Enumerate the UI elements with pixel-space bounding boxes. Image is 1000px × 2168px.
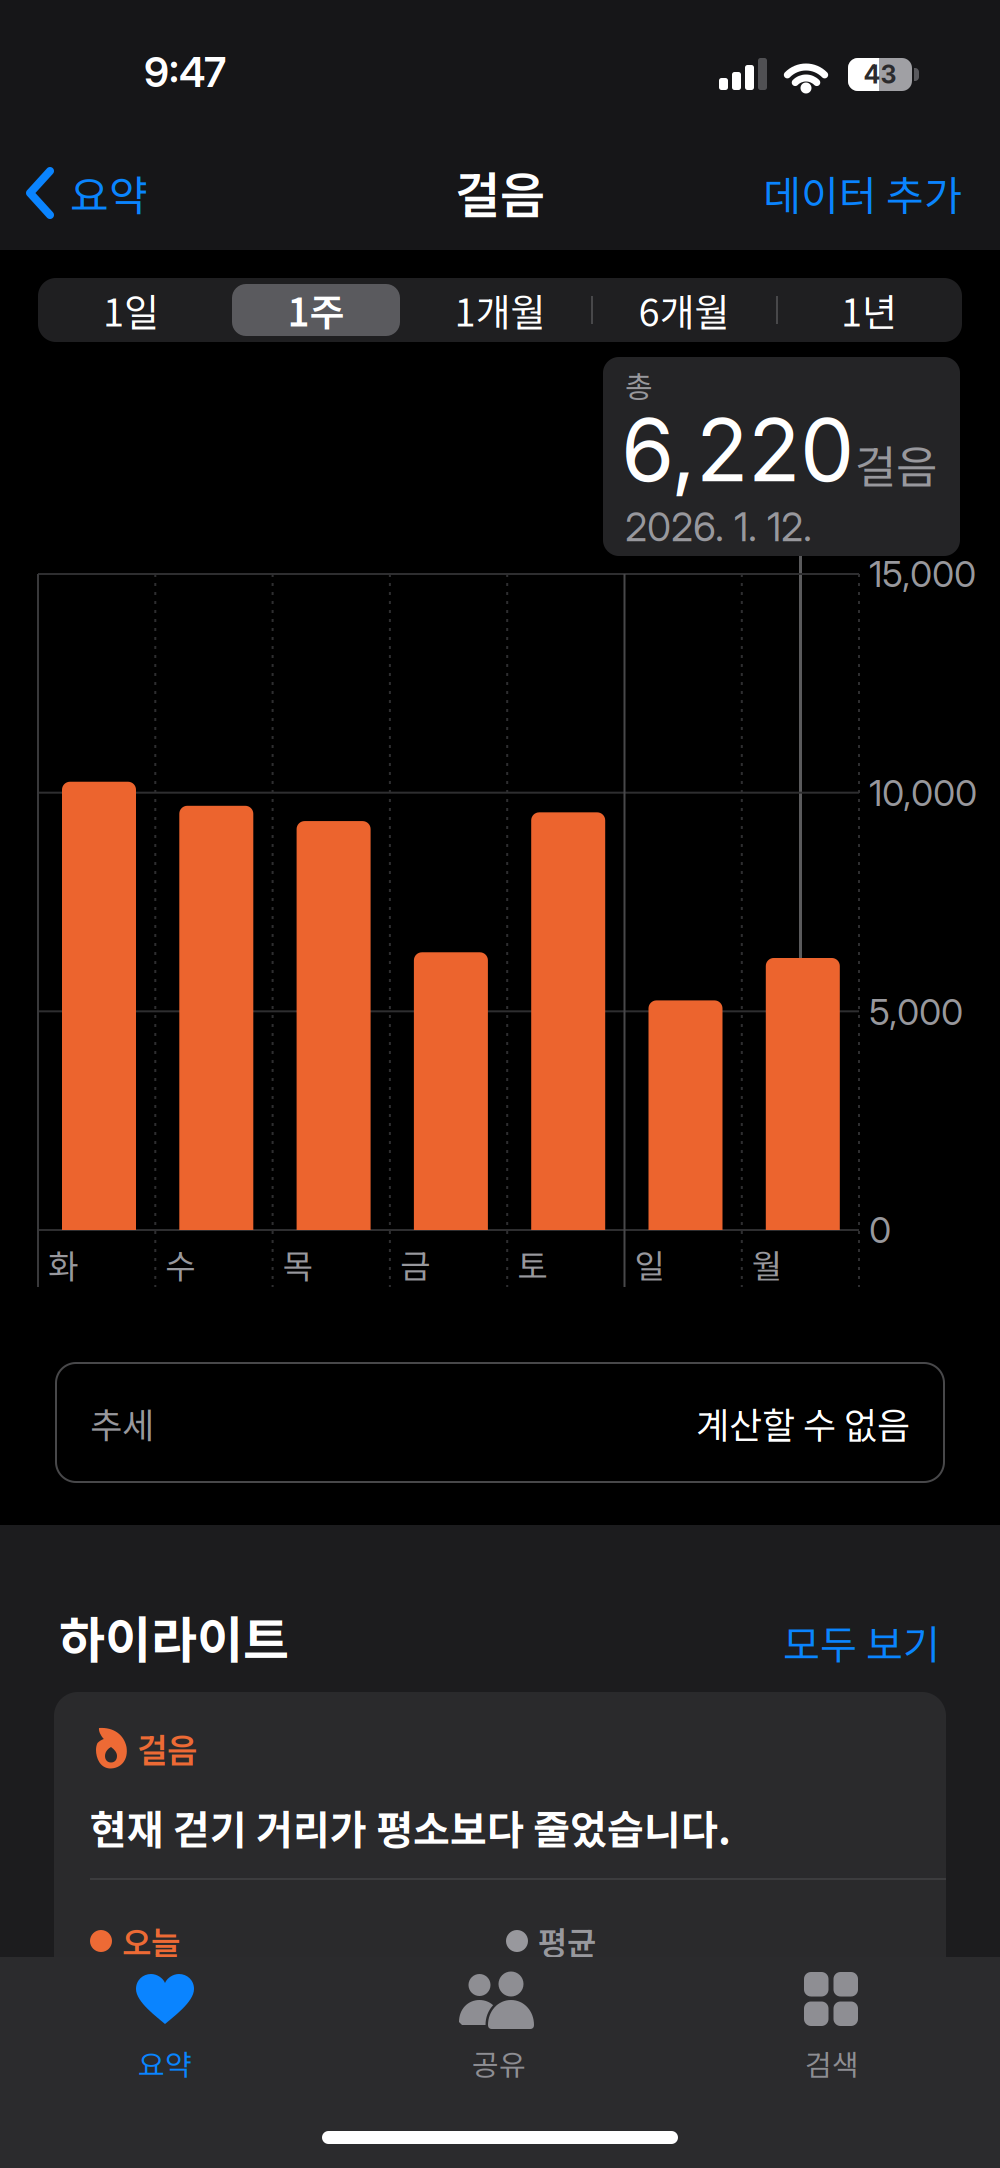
staticText: 토 — [517, 1240, 547, 1288]
staticText: 43 — [863, 59, 896, 90]
button[interactable]: 요약 — [0, 0, 150, 106]
staticText: 추세 — [90, 1398, 154, 1448]
staticText: 현재 걷기 거리가 평소보다 줄었습니다. — [90, 1798, 731, 1856]
staticText: 총 — [625, 363, 653, 407]
staticText: 화 — [48, 1240, 78, 1288]
staticText: 요약 — [70, 163, 148, 223]
staticText: 오늘 — [122, 1918, 180, 1964]
staticText: 6,220 — [621, 398, 854, 502]
staticText: 요약 — [138, 2042, 192, 2084]
staticText: 10,000 — [869, 771, 977, 815]
staticText: 2026. 1. 12. — [625, 503, 812, 551]
staticText: 15,000 — [869, 552, 976, 596]
staticText: 6개월 — [638, 282, 729, 337]
staticText: 걸음 — [137, 1724, 197, 1772]
button[interactable]: 요약 — [0, 0, 240, 58]
staticText: 1년 — [841, 282, 897, 337]
button[interactable]: 검색 — [0, 0, 150, 106]
staticText: 0 — [869, 1208, 891, 1252]
staticText: 걸음 — [855, 431, 937, 497]
staticText: 월 — [752, 1240, 782, 1288]
button[interactable]: 공유 — [0, 0, 150, 106]
button[interactable]: 걸음 — [54, 1692, 946, 2168]
button[interactable]: 데이터 추가 — [0, 0, 307, 58]
staticText: 걸음 — [455, 156, 545, 227]
staticText: 1일 — [103, 282, 159, 337]
staticText: 목 — [283, 1240, 313, 1288]
staticText: 수 — [165, 1240, 195, 1288]
staticText: 공유 — [472, 2042, 526, 2084]
staticText: 계산할 수 없음 — [696, 1397, 910, 1449]
staticText: 1주 — [287, 282, 344, 337]
staticText: 5,000 — [869, 990, 963, 1034]
button[interactable]: 추세 — [0, 0, 1000, 2168]
staticText: 평균 — [538, 1918, 596, 1964]
staticText: 금 — [400, 1240, 430, 1288]
staticText: 일 — [634, 1240, 664, 1288]
staticText: 하이라이트 — [59, 1601, 289, 1673]
staticText: 1개월 — [454, 282, 545, 337]
staticText: 9:47 — [144, 47, 226, 97]
staticText: 모두 보기 — [783, 1613, 940, 1671]
staticText: 데이터 추가 — [763, 163, 962, 223]
staticText: 검색 — [805, 2042, 859, 2084]
